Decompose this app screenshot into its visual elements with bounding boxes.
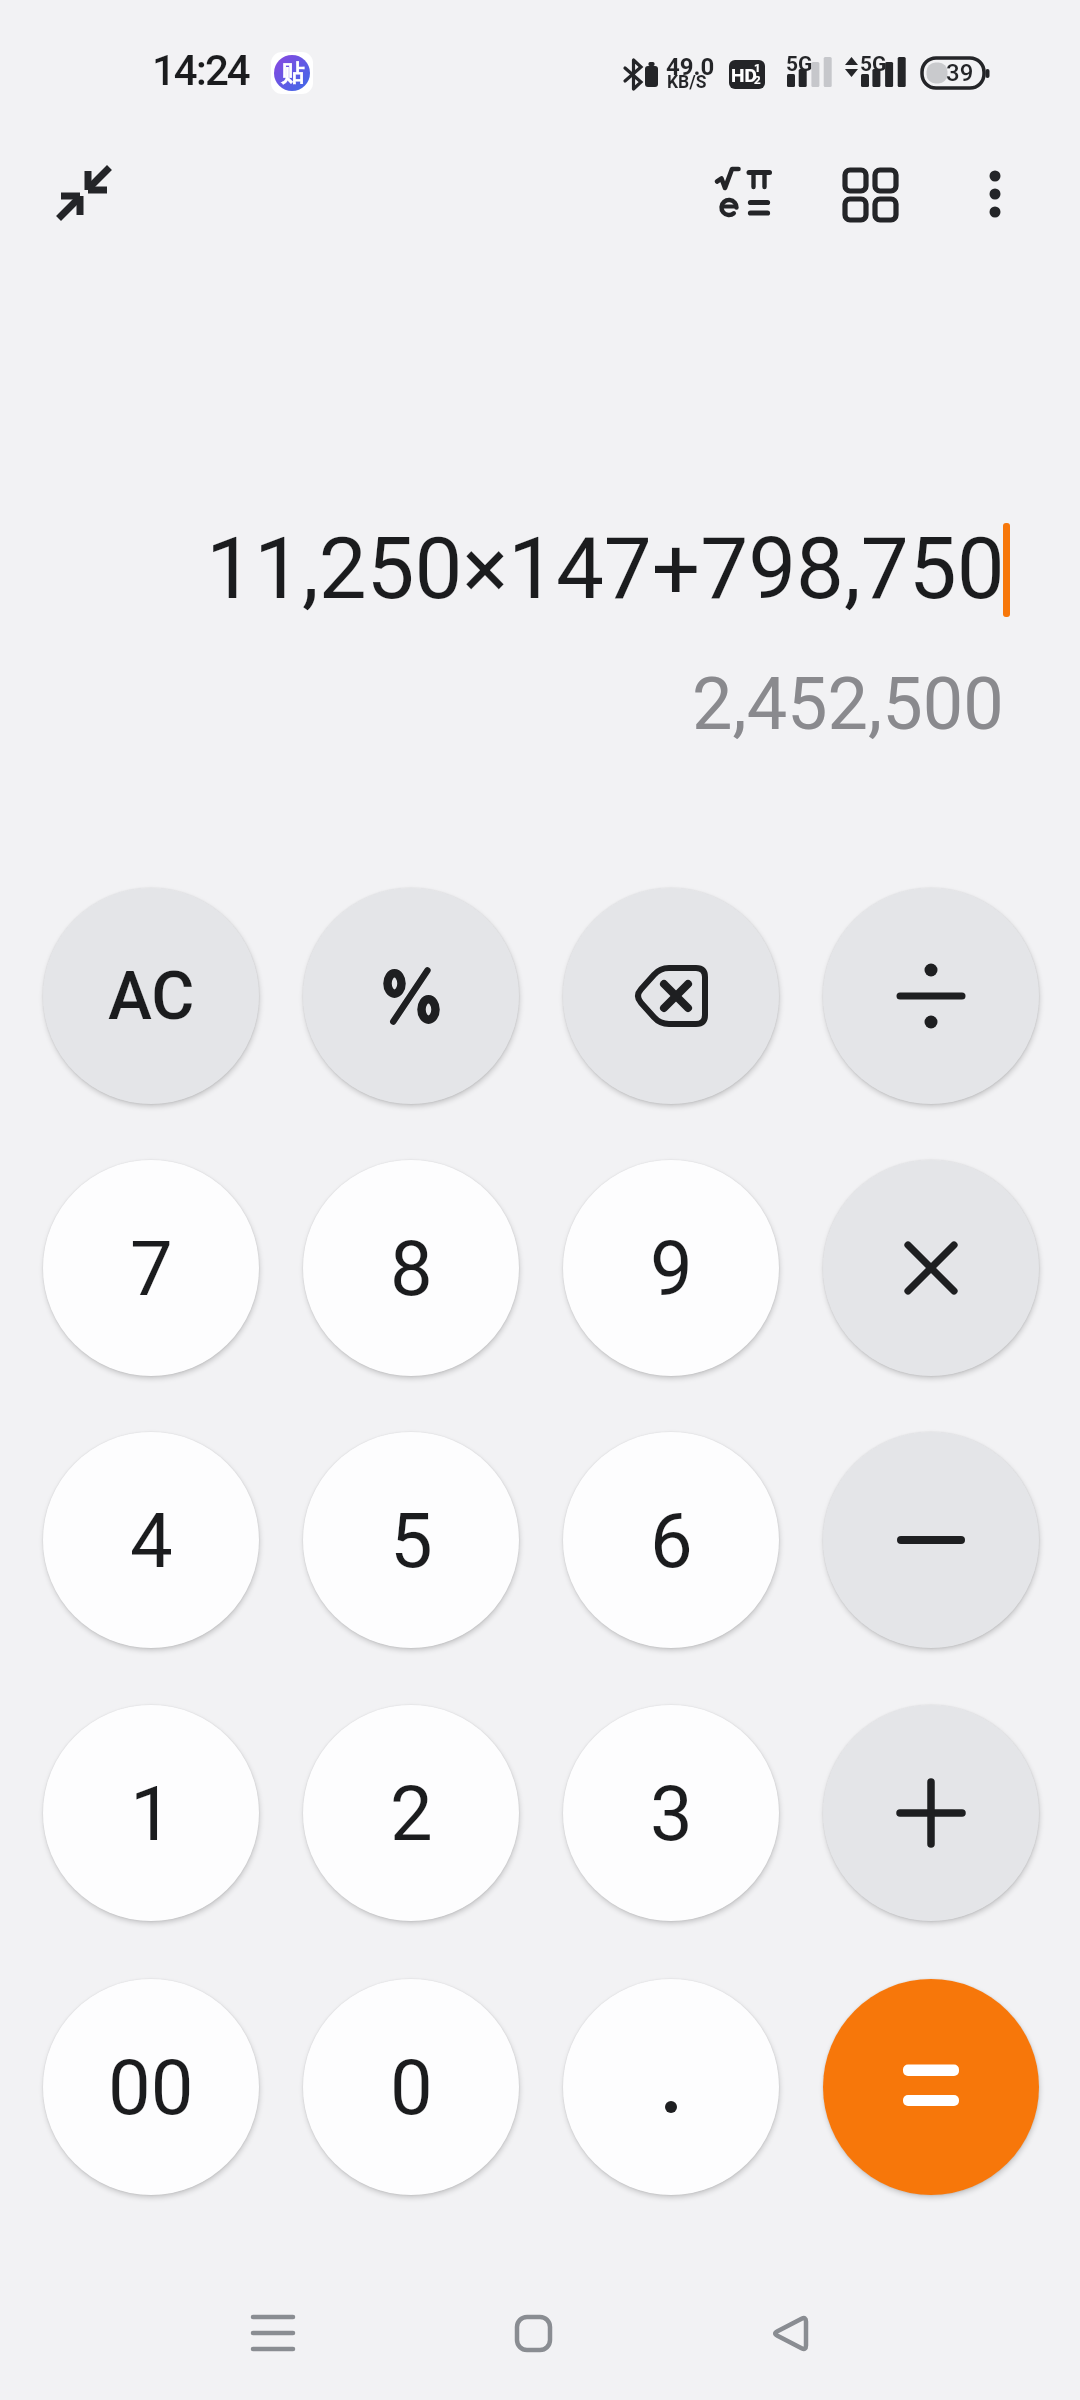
staticText: 39 — [946, 59, 974, 87]
staticText: 5G — [786, 52, 813, 77]
button[interactable] — [233, 2293, 313, 2373]
staticText: 6 — [650, 1496, 693, 1585]
button[interactable] — [823, 888, 1039, 1104]
button[interactable]: AC — [43, 888, 259, 1104]
button[interactable] — [563, 888, 779, 1104]
staticText: KB/S — [667, 72, 707, 93]
staticText: 1 — [130, 1769, 173, 1858]
button[interactable] — [303, 888, 519, 1104]
button[interactable] — [836, 160, 904, 228]
button[interactable]: 2 — [303, 1705, 519, 1921]
button[interactable]: 0 — [303, 1979, 519, 2195]
button[interactable] — [46, 156, 122, 232]
button[interactable] — [563, 1979, 779, 2195]
button[interactable] — [823, 1705, 1039, 1921]
button[interactable] — [823, 1160, 1039, 1376]
button[interactable] — [823, 1979, 1039, 2195]
staticText: 14:24 — [152, 46, 249, 95]
button[interactable] — [706, 158, 782, 234]
button[interactable]: 3 — [563, 1705, 779, 1921]
staticText: 49.0 — [666, 53, 715, 81]
button[interactable]: 8 — [303, 1160, 519, 1376]
staticText: 贴 — [281, 59, 304, 88]
staticText: 4 — [130, 1496, 173, 1585]
staticText: 8 — [390, 1224, 433, 1313]
button[interactable]: 9 — [563, 1160, 779, 1376]
staticText: 0 — [390, 2043, 433, 2132]
staticText: 9 — [650, 1224, 693, 1313]
button[interactable] — [750, 2293, 830, 2373]
button[interactable] — [493, 2293, 573, 2373]
button[interactable]: 00 — [43, 1979, 259, 2195]
staticText: 11,250×147+798,750 — [206, 519, 1005, 619]
staticText: 5 — [390, 1496, 433, 1585]
button[interactable] — [823, 1432, 1039, 1648]
staticText: 00 — [108, 2043, 194, 2132]
button[interactable]: 4 — [43, 1432, 259, 1648]
button[interactable]: 6 — [563, 1432, 779, 1648]
staticText: AC — [108, 958, 195, 1035]
button[interactable] — [966, 158, 1026, 218]
staticText: 5G — [860, 52, 887, 77]
button[interactable]: 7 — [43, 1160, 259, 1376]
staticText: 2 — [390, 1769, 433, 1858]
staticText: HD — [731, 64, 757, 86]
button[interactable]: 5 — [303, 1432, 519, 1648]
staticText: 3 — [650, 1769, 693, 1858]
staticText: 2 — [754, 73, 761, 86]
staticText: 2,452,500 — [692, 662, 1004, 746]
button[interactable]: 1 — [43, 1705, 259, 1921]
staticText: 1 — [754, 61, 761, 74]
staticText: 7 — [130, 1224, 173, 1313]
